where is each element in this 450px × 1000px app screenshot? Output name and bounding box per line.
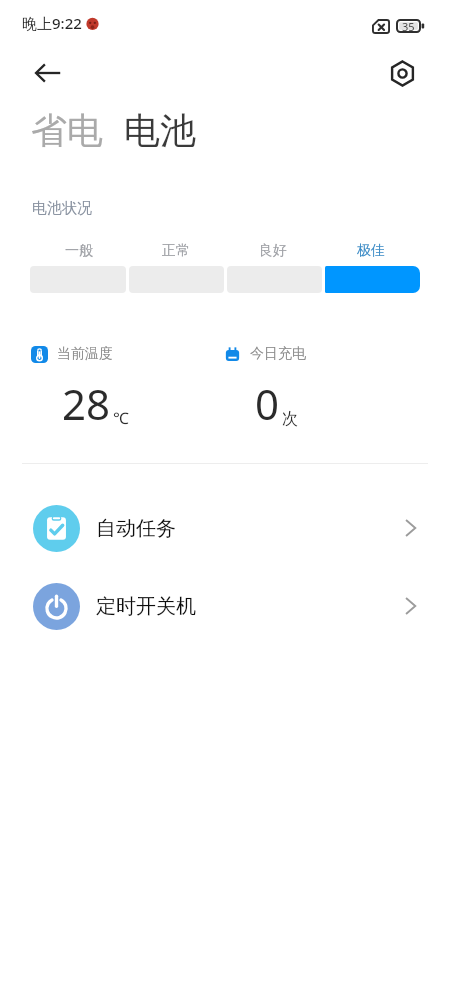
staticText: 0 [255, 375, 280, 432]
button[interactable]: 省电 [31, 108, 103, 153]
button[interactable]: 电池 [124, 108, 196, 153]
staticText: 电池 [124, 108, 196, 153]
staticText: 35 [402, 19, 415, 34]
staticText: 良好 [259, 242, 287, 260]
button[interactable]: 自动任务 [0, 489, 450, 567]
staticText: 电池状况 [32, 199, 92, 218]
button[interactable]: Settings [380, 51, 424, 95]
staticText: 正常 [162, 242, 190, 260]
staticText: 28 [62, 375, 111, 432]
staticText: 次 [282, 409, 298, 429]
staticText: 一般 [65, 242, 93, 260]
button[interactable]: 定时开关机 [0, 567, 450, 645]
button[interactable]: Back [26, 51, 70, 95]
staticText: ℃ [113, 407, 129, 429]
staticText: 定时开关机 [96, 594, 196, 619]
staticText: 今日充电 [250, 345, 306, 363]
staticText: 极佳 [357, 242, 385, 260]
staticText: 省电 [31, 108, 103, 153]
staticText: 自动任务 [96, 516, 176, 541]
staticText: 当前温度 [57, 345, 113, 363]
staticText: 晚上9:22 [22, 13, 82, 33]
